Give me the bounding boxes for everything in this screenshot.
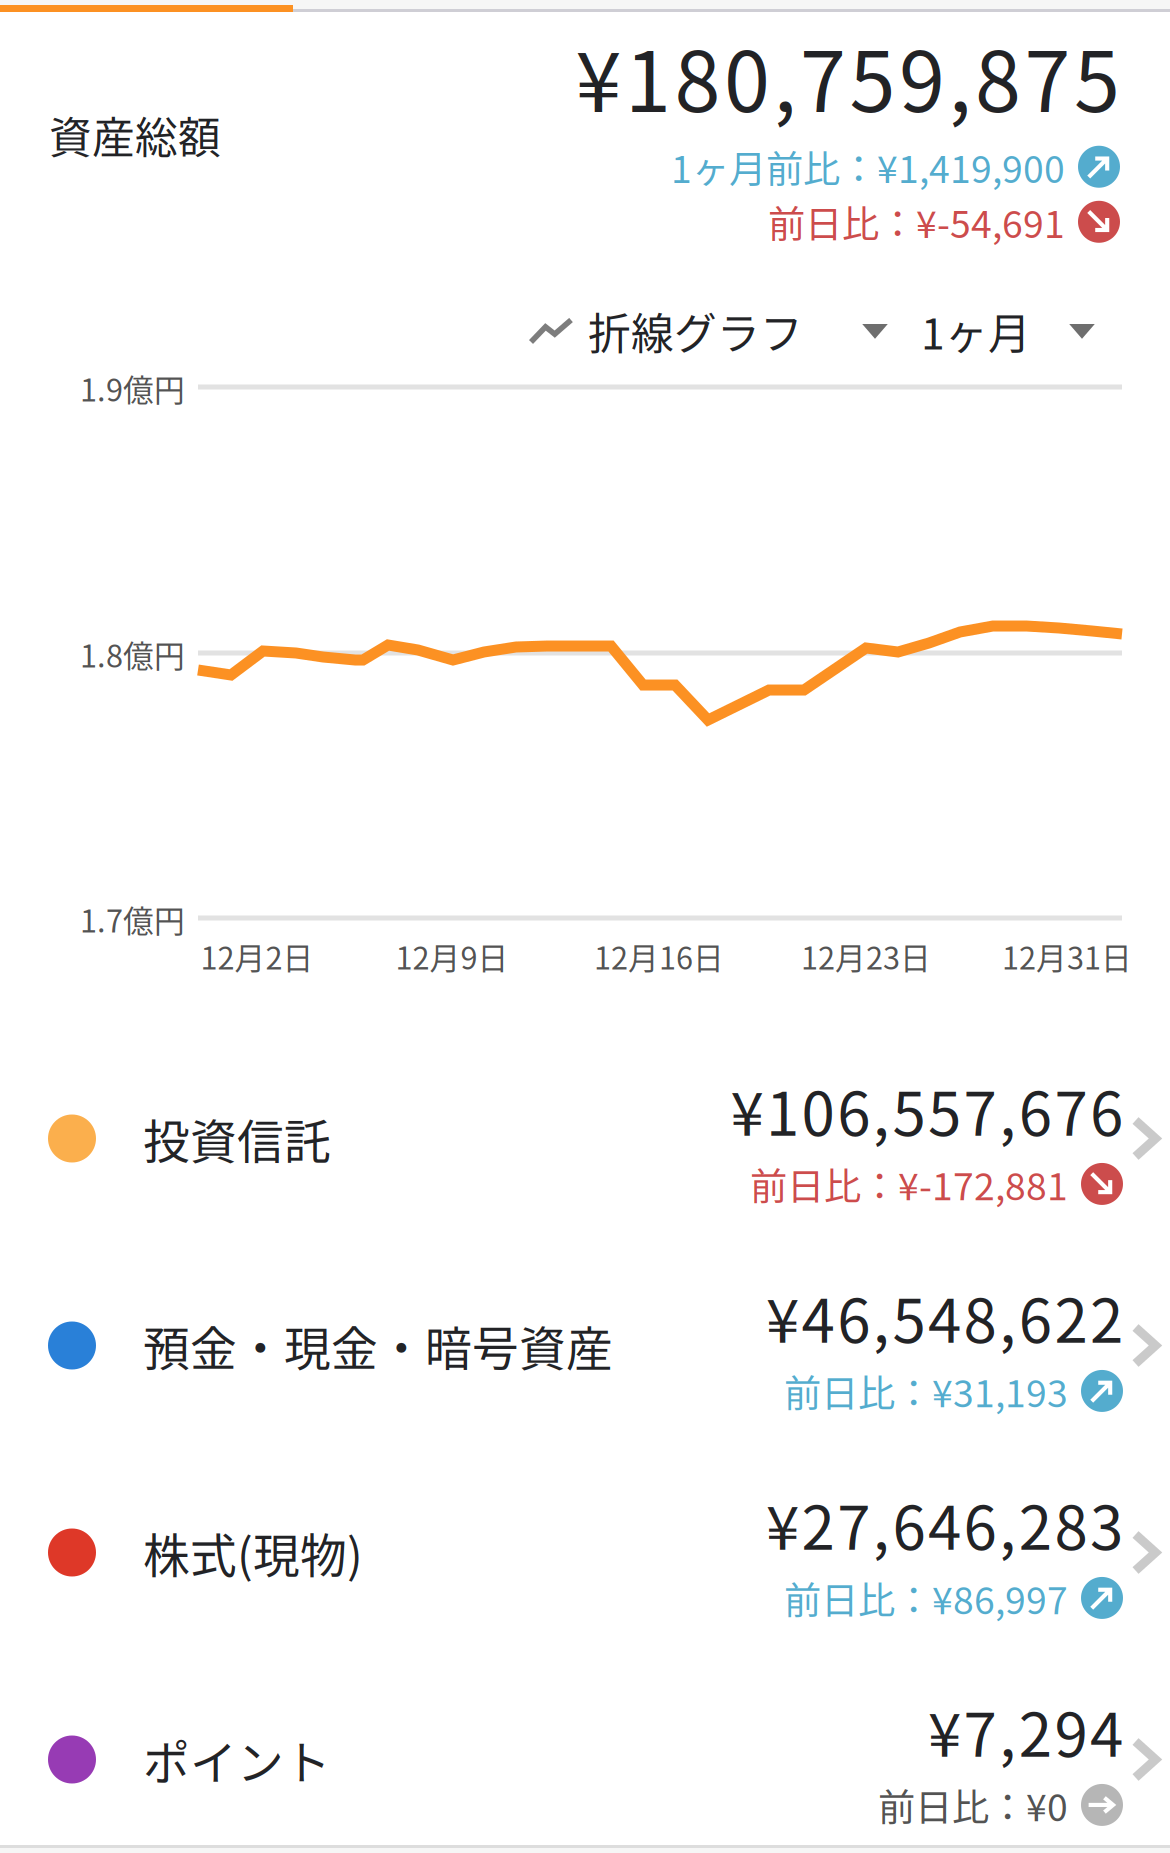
button[interactable]: 投資信託 bbox=[0, 1035, 1170, 1242]
staticText: 1.9億円 bbox=[80, 366, 185, 410]
button[interactable]: 折線グラフ bbox=[528, 295, 886, 367]
staticText: ¥7,294 bbox=[928, 1687, 1123, 1774]
staticText: 12月31日 bbox=[1002, 934, 1132, 978]
staticText: 1ヶ月 bbox=[921, 300, 1031, 362]
staticText: 1.8億円 bbox=[80, 632, 185, 676]
staticText: 株式(現物) bbox=[143, 1519, 363, 1586]
button[interactable]: 株式(現物) bbox=[0, 1449, 1170, 1656]
staticText: ¥106,557,676 bbox=[730, 1066, 1123, 1153]
staticText: 12月16日 bbox=[594, 934, 724, 978]
staticText: 12月9日 bbox=[395, 934, 508, 978]
staticText: 前日比：¥86,997 bbox=[784, 1571, 1068, 1625]
staticText: ポイント bbox=[143, 1726, 331, 1793]
staticText: 投資信託 bbox=[143, 1105, 331, 1172]
staticText: ¥46,548,622 bbox=[766, 1273, 1123, 1360]
staticText: 折線グラフ bbox=[588, 300, 803, 362]
staticText: 前日比：¥-172,881 bbox=[750, 1157, 1068, 1211]
staticText: 12月2日 bbox=[200, 934, 313, 978]
staticText: 資産総額 bbox=[49, 104, 221, 166]
button[interactable]: ポイント bbox=[0, 1656, 1170, 1853]
staticText: ¥27,646,283 bbox=[766, 1480, 1123, 1567]
staticText: ¥180,759,875 bbox=[575, 16, 1120, 136]
staticText: 前日比：¥31,193 bbox=[784, 1364, 1068, 1418]
button[interactable]: 預金・現金・暗号資産 bbox=[0, 1242, 1170, 1449]
staticText: 預金・現金・暗号資産 bbox=[143, 1312, 613, 1379]
staticText: 1.7億円 bbox=[80, 897, 185, 941]
staticText: 1ヶ月前比：¥1,419,900 bbox=[671, 140, 1065, 194]
staticText: 12月23日 bbox=[801, 934, 931, 978]
staticText: 前日比：¥0 bbox=[878, 1778, 1068, 1832]
button[interactable]: 1ヶ月 bbox=[921, 295, 1093, 367]
staticText: 前日比：¥-54,691 bbox=[768, 195, 1065, 249]
